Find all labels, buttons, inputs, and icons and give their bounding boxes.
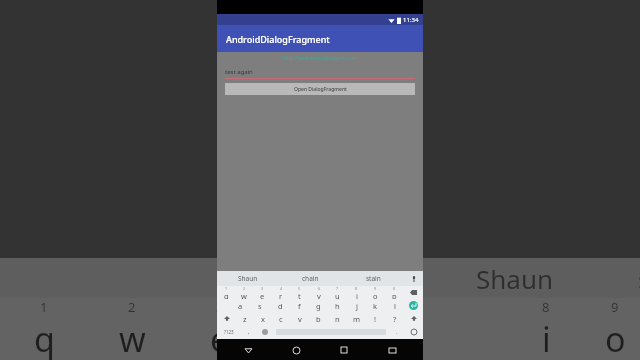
staticText: .	[396, 328, 398, 336]
button[interactable]: n	[328, 312, 347, 325]
staticText: stain	[366, 274, 381, 283]
button[interactable]: Open DialogFragment	[225, 83, 415, 95]
button[interactable]: ?	[385, 312, 404, 325]
button[interactable]: k	[366, 299, 385, 312]
button[interactable]: !	[366, 312, 385, 325]
button[interactable]: 3	[253, 286, 271, 299]
staticText: w	[119, 316, 146, 360]
staticText: r	[279, 291, 283, 299]
button[interactable]: c	[272, 312, 290, 325]
staticText: s	[258, 301, 262, 311]
staticText: o	[605, 316, 626, 360]
button[interactable]: s	[250, 299, 270, 312]
staticText: i	[542, 316, 551, 360]
staticText: 4	[280, 286, 283, 291]
staticText: w	[241, 291, 247, 299]
button[interactable]: l	[385, 299, 404, 312]
button[interactable]: 4	[271, 286, 290, 299]
staticText: Open DialogFragment	[294, 86, 347, 93]
staticText: ?123	[224, 329, 234, 335]
button[interactable]: Shaun	[217, 271, 279, 286]
button[interactable]: 1	[217, 286, 235, 299]
button[interactable]: Backspace	[404, 286, 423, 299]
staticText: 3	[261, 286, 264, 291]
staticText: e	[260, 291, 265, 299]
staticText: p	[392, 291, 397, 299]
staticText: t	[298, 291, 301, 299]
staticText: f	[298, 301, 301, 311]
button[interactable]: f	[290, 299, 309, 312]
button[interactable]: ?123	[217, 325, 241, 339]
button[interactable]: 2	[235, 286, 253, 299]
button[interactable]: 7	[328, 286, 347, 299]
button[interactable]: Period	[389, 325, 405, 339]
button[interactable]: Emoji	[257, 325, 273, 339]
staticText: b	[316, 314, 321, 324]
staticText: 1	[225, 286, 228, 291]
button[interactable]: Enter	[404, 299, 423, 312]
staticText: Shaun	[476, 261, 554, 296]
button[interactable]: 9	[366, 286, 385, 299]
staticText: stain	[638, 261, 640, 296]
staticText: Shaun	[238, 274, 258, 283]
staticText: c	[279, 314, 283, 324]
button[interactable]: stain	[342, 271, 405, 286]
button[interactable]: Back	[241, 343, 255, 357]
staticText: ,	[248, 328, 250, 336]
staticText: 9	[374, 286, 377, 291]
staticText: 1	[40, 298, 48, 316]
button[interactable]: 8	[347, 286, 366, 299]
staticText: n	[335, 314, 340, 324]
staticText: a	[238, 301, 243, 311]
button[interactable]: chain	[279, 271, 342, 286]
staticText: x	[261, 314, 265, 324]
button[interactable]: m	[347, 312, 366, 325]
staticText: y	[317, 291, 321, 299]
button[interactable]: b	[309, 312, 328, 325]
staticText: i	[356, 291, 358, 299]
button[interactable]: Hide keyboard	[385, 343, 399, 357]
button[interactable]: j	[347, 299, 366, 312]
staticText: 0	[393, 286, 396, 291]
staticText: j	[356, 301, 358, 311]
button[interactable]: Emoji keyboard	[405, 325, 423, 339]
staticText: 2	[128, 298, 136, 316]
staticText: k	[373, 301, 378, 311]
button[interactable]: x	[254, 312, 272, 325]
staticText: 9	[611, 298, 619, 316]
staticText: u	[335, 291, 340, 299]
staticText: r	[301, 316, 316, 360]
button[interactable]: h	[328, 299, 347, 312]
button[interactable]: 5	[290, 286, 309, 299]
button[interactable]: Home	[289, 343, 303, 357]
staticText: 8	[355, 286, 358, 291]
staticText: http://android-er.blogspot.com	[217, 55, 423, 62]
button[interactable]: Recents	[337, 343, 351, 357]
staticText: d	[278, 301, 283, 311]
staticText: e	[210, 316, 230, 360]
staticText: test again	[225, 68, 253, 76]
staticText: 8	[542, 298, 550, 316]
button[interactable]: Comma	[241, 325, 257, 339]
button[interactable]: d	[270, 299, 290, 312]
button[interactable]: Shift	[217, 312, 236, 325]
staticText: o	[373, 291, 378, 299]
staticText: q	[224, 291, 229, 299]
button[interactable]: 6	[309, 286, 328, 299]
button[interactable]: a	[230, 299, 250, 312]
staticText: chain	[302, 274, 319, 283]
staticText: z	[243, 314, 247, 324]
staticText: l	[394, 301, 396, 311]
button[interactable]: Voice input	[405, 271, 423, 286]
staticText: 3	[216, 298, 224, 316]
button[interactable]: g	[309, 299, 328, 312]
staticText: 5	[298, 286, 301, 291]
button[interactable]: v	[290, 312, 309, 325]
button[interactable]: z	[236, 312, 254, 325]
staticText: 6	[318, 286, 321, 291]
staticText: 7	[336, 286, 339, 291]
button[interactable]: 0	[385, 286, 404, 299]
staticText: q	[34, 316, 55, 360]
button[interactable]: Shift	[404, 312, 423, 325]
